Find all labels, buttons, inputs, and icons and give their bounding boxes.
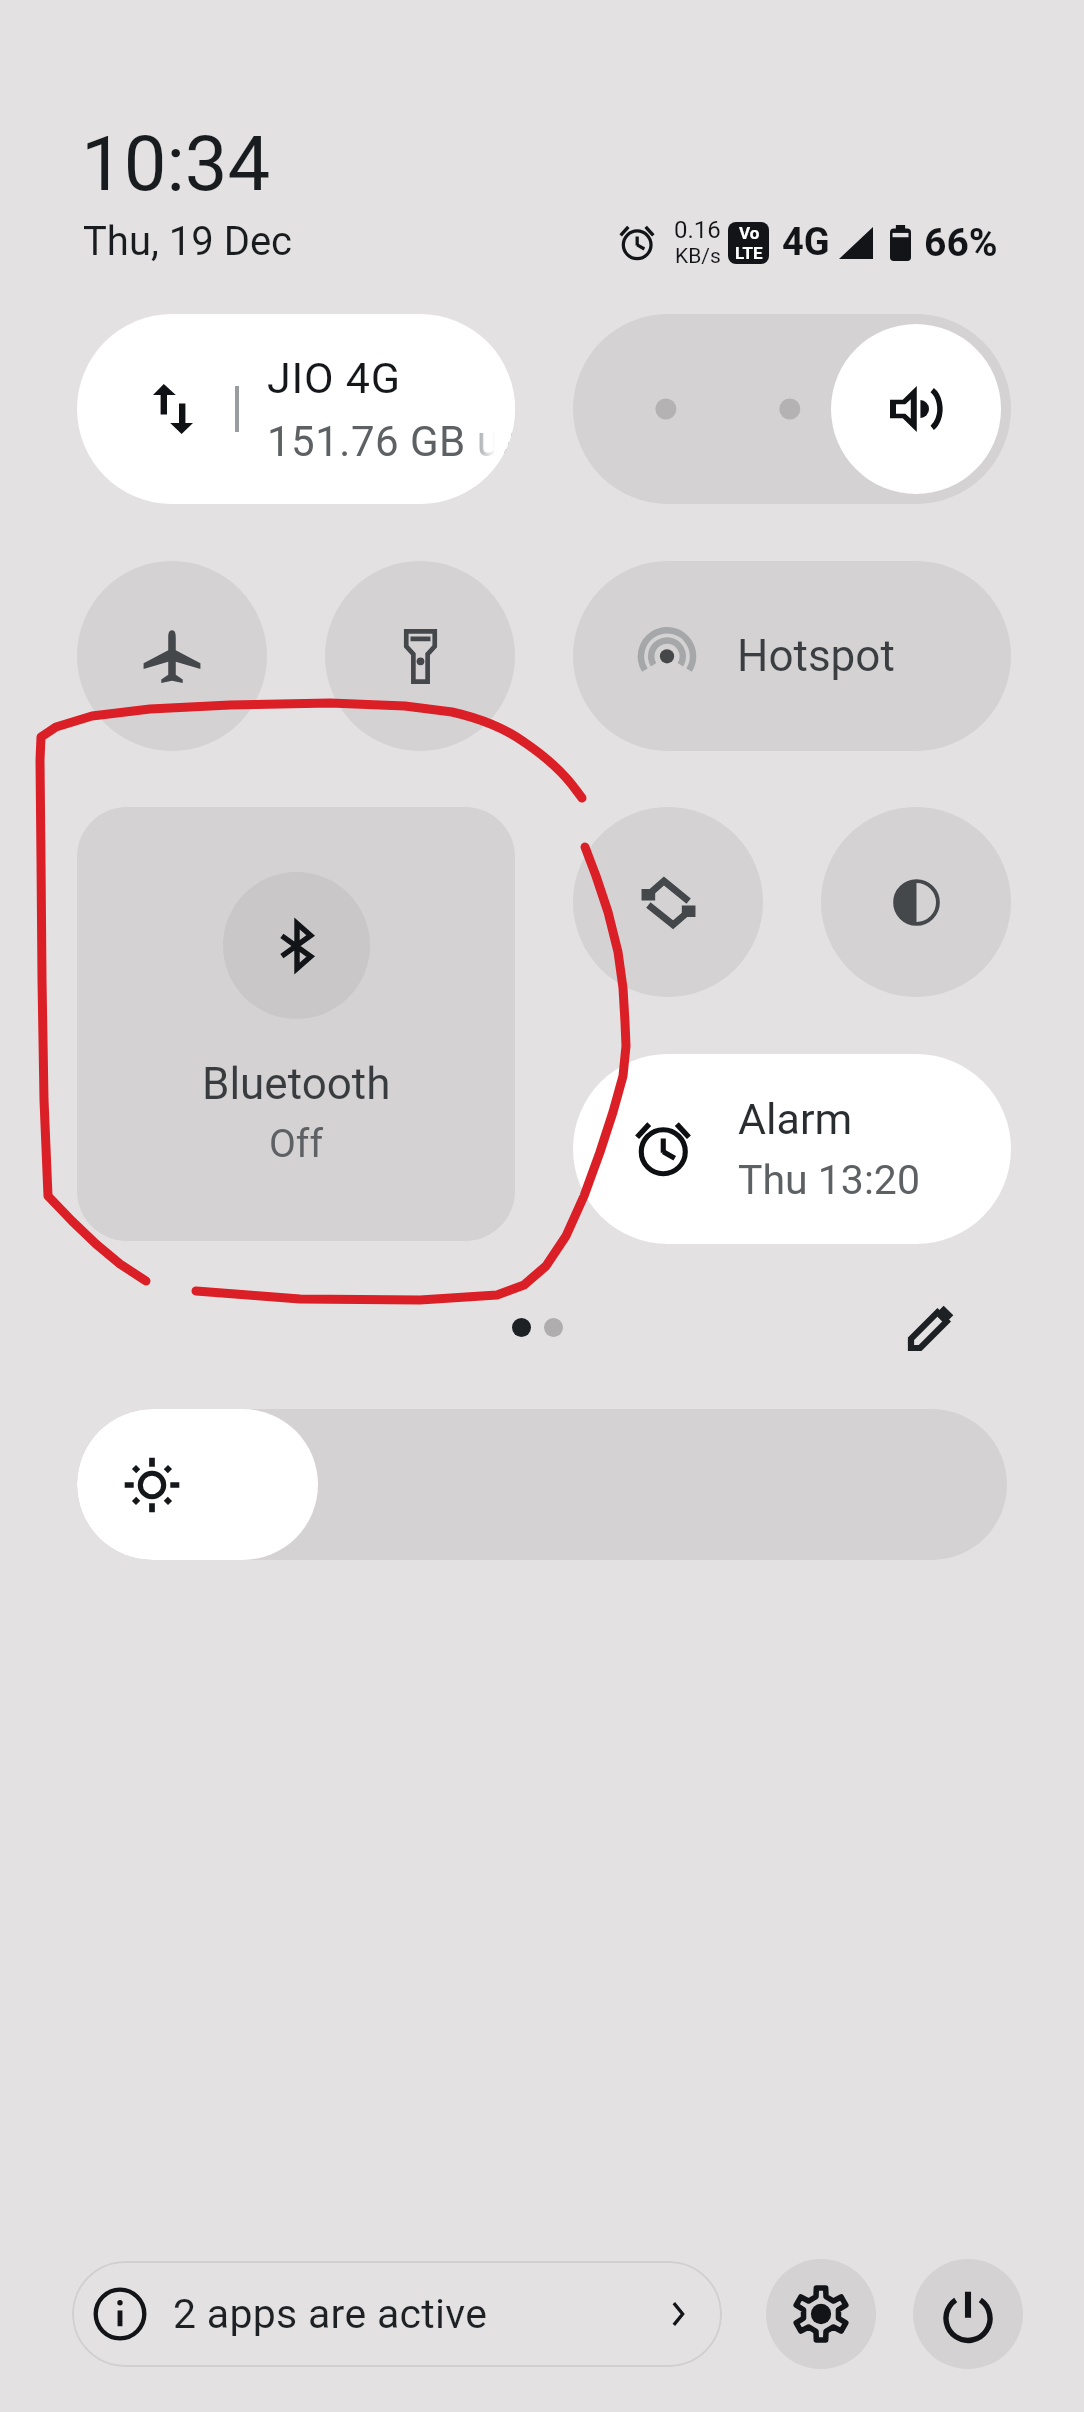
staticText: 10:34 [81, 119, 271, 208]
staticText: Thu, 19 Dec [83, 218, 293, 265]
button[interactable]: Edit quick settings [897, 1294, 965, 1362]
staticText: Vo [739, 223, 760, 243]
button[interactable]: Dark theme [821, 807, 1011, 997]
staticText: 2 apps are active [173, 2290, 488, 2338]
staticText: LTE [735, 243, 763, 263]
button[interactable]: 2 apps are active [72, 2261, 722, 2367]
staticText: Bluetooth [202, 1058, 391, 1110]
staticText: 151.76 GB used [267, 417, 515, 466]
staticText: Alarm [738, 1094, 853, 1144]
button[interactable]: Bluetooth [77, 807, 515, 1241]
button[interactable]: Hotspot [573, 561, 1011, 751]
button[interactable]: Brightness [77, 1409, 1007, 1560]
button[interactable]: Power [913, 2259, 1023, 2369]
staticText: 66% [924, 220, 998, 266]
button[interactable]: Page 1 [512, 1318, 531, 1337]
staticText: Hotspot [737, 630, 895, 682]
button[interactable]: Airplane mode [77, 561, 267, 751]
staticText: JIO 4G [267, 353, 401, 403]
staticText: Off [269, 1121, 323, 1167]
button[interactable]: Auto-rotate [573, 807, 763, 997]
staticText: 0.16 [674, 216, 721, 244]
button[interactable]: Page 2 [544, 1318, 563, 1337]
button[interactable]: Alarm [573, 1054, 1011, 1244]
staticText: 4G [782, 220, 830, 265]
button[interactable]: Settings [766, 2259, 876, 2369]
staticText: Thu 13:20 [738, 1156, 920, 1204]
button[interactable]: JIO 4G [77, 314, 515, 504]
button[interactable]: Flashlight [325, 561, 515, 751]
button[interactable]: Volume [573, 314, 1011, 504]
staticText: KB/s [675, 244, 721, 269]
